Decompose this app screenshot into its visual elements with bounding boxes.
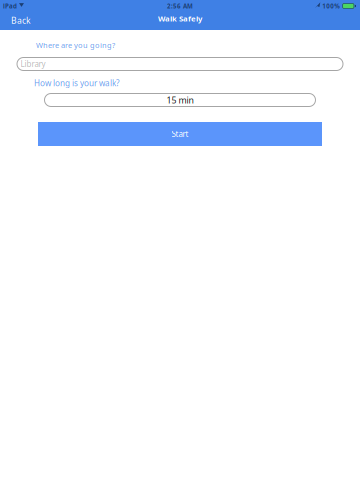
- staticText: Back: [11, 15, 31, 26]
- staticText: Start: [171, 129, 188, 139]
- button[interactable]: 15 min: [44, 93, 316, 107]
- button[interactable]: Library: [16, 57, 343, 71]
- button[interactable]: Start: [38, 122, 322, 146]
- staticText: Where are you going?: [36, 40, 115, 50]
- staticText: Library: [20, 59, 45, 69]
- staticText: 100%: [322, 2, 340, 10]
- staticText: How long is your walk?: [34, 77, 120, 89]
- staticText: 2:56 AM: [167, 2, 193, 10]
- staticText: iPad: [3, 2, 17, 10]
- staticText: 15 min: [166, 94, 193, 106]
- staticText: Walk Safely: [158, 13, 202, 24]
- button[interactable]: Back: [0, 11, 72, 29]
